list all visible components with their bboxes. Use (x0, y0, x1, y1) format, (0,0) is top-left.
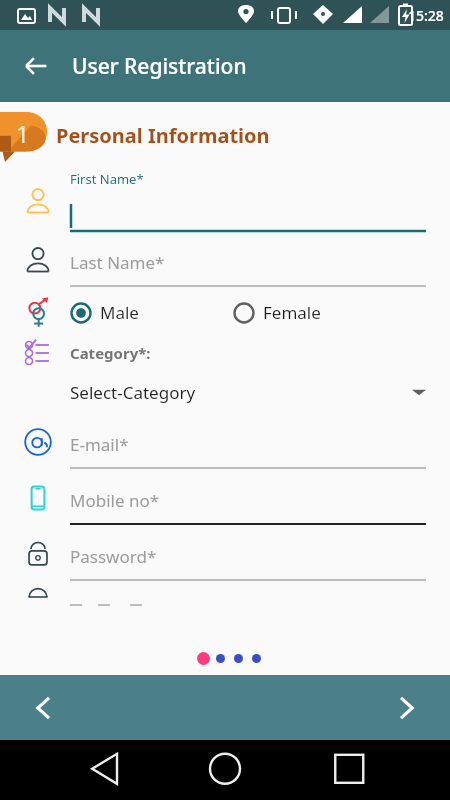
staticText: Select-Category (70, 381, 196, 404)
staticText: Female (263, 301, 321, 324)
button[interactable]: E-mail* (0, 414, 450, 470)
staticText: Male (100, 301, 139, 324)
staticText: User Registration (72, 52, 247, 81)
staticText: E-mail* (70, 433, 129, 456)
staticText: 15:28 (408, 6, 444, 25)
button[interactable]: Previous (20, 684, 68, 732)
staticText: Password* (70, 545, 157, 568)
button[interactable]: Mobile no* (0, 470, 450, 526)
staticText: 1 (16, 118, 30, 149)
button[interactable]: Next (382, 684, 430, 732)
staticText: Last Name* (70, 251, 165, 274)
staticText: Personal Information (56, 122, 270, 149)
button[interactable]: Male (70, 301, 143, 324)
button[interactable]: Last Name* (0, 232, 450, 288)
button[interactable]: Password* (0, 526, 450, 582)
button[interactable]: Back (16, 46, 56, 86)
staticText: Category*: (70, 343, 151, 363)
button[interactable]: Select-Category (0, 370, 450, 414)
staticText: Mobile no* (70, 489, 160, 512)
staticText: First Name* (70, 170, 144, 188)
button[interactable]: Female (233, 301, 325, 324)
